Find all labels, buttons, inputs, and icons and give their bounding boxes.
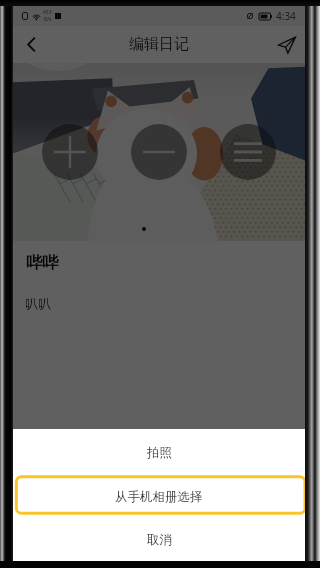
staticText: 哔哔 xyxy=(26,253,58,273)
button[interactable]: 取消 xyxy=(13,518,305,561)
button[interactable]: 从手机相册选择 xyxy=(13,480,305,513)
staticText: 4:34 xyxy=(276,9,296,23)
staticText: 编辑日记 xyxy=(129,35,189,54)
button[interactable]: 拍照 xyxy=(13,429,305,477)
staticText: 拍照 xyxy=(147,445,172,461)
button[interactable]: Reorder photos xyxy=(220,124,276,180)
staticText: 453 xyxy=(43,9,52,16)
staticText: 从手机相册选择 xyxy=(115,489,203,505)
staticText: 叭叭 xyxy=(25,295,51,311)
staticText: B/s xyxy=(44,16,52,23)
button[interactable]: Back xyxy=(13,26,50,63)
staticText: 取消 xyxy=(147,532,172,548)
button[interactable]: Send xyxy=(268,26,305,63)
button[interactable]: Remove photo xyxy=(131,124,187,180)
button[interactable]: Add photo xyxy=(42,124,98,180)
